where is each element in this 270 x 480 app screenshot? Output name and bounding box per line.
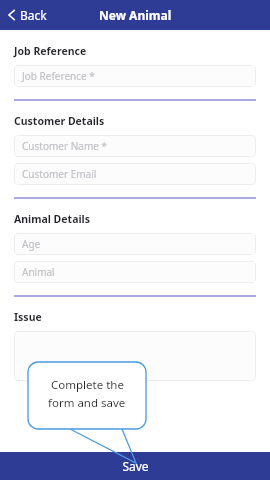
button[interactable]: Customer Name * (14, 135, 256, 157)
staticText: Customer Details (14, 114, 105, 128)
staticText: Job Reference (14, 44, 87, 58)
staticText: Animal Details (14, 212, 90, 226)
staticText: New Animal (99, 7, 172, 23)
button[interactable]: Complete the (34, 377, 140, 411)
staticText: Customer Email (22, 167, 97, 181)
staticText: Back (20, 7, 47, 23)
button[interactable]: Back (0, 3, 55, 27)
button[interactable]: Animal (14, 261, 256, 283)
button[interactable]: Save (0, 452, 270, 480)
staticText: Animal (22, 265, 55, 279)
button[interactable]: Job Reference * (14, 65, 256, 87)
button[interactable]: Age (14, 233, 256, 255)
staticText: Complete the (51, 377, 124, 393)
staticText: form and save (48, 395, 126, 411)
button[interactable] (14, 331, 256, 381)
staticText: Age (22, 237, 41, 251)
other: Back (8, 9, 16, 21)
staticText: Issue (14, 310, 42, 324)
button[interactable]: Customer Email (14, 163, 256, 185)
staticText: Save (122, 458, 149, 474)
staticText: Customer Name * (22, 139, 107, 153)
staticText: Job Reference * (22, 69, 95, 83)
